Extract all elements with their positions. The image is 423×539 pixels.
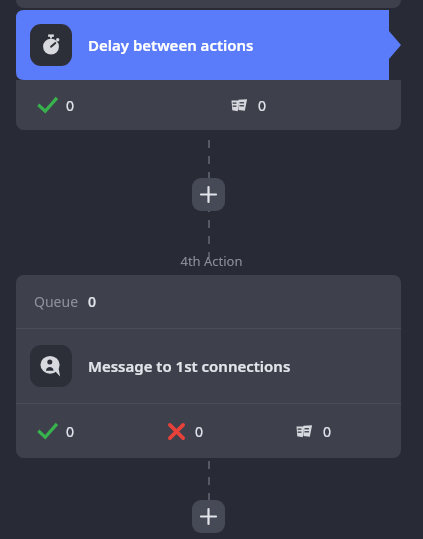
staticText: 0	[88, 292, 97, 311]
staticText: Message to 1st connections	[88, 356, 291, 376]
button[interactable]: 0	[16, 404, 401, 458]
staticText: Queue	[34, 292, 79, 311]
staticText: 0	[323, 422, 332, 441]
staticText: 0	[258, 96, 267, 115]
button[interactable]: Message to 1st connections	[30, 329, 401, 403]
staticText: Delay between actions	[88, 35, 254, 55]
button[interactable]: Add action	[192, 178, 225, 211]
staticText: 0	[195, 422, 204, 441]
staticText: 4th Action	[180, 252, 243, 270]
button[interactable]: Queue	[16, 275, 401, 328]
staticText: 0	[66, 422, 75, 441]
button[interactable]: 0	[16, 80, 401, 130]
button[interactable]: Add action	[192, 500, 225, 533]
staticText: 0	[66, 96, 75, 115]
